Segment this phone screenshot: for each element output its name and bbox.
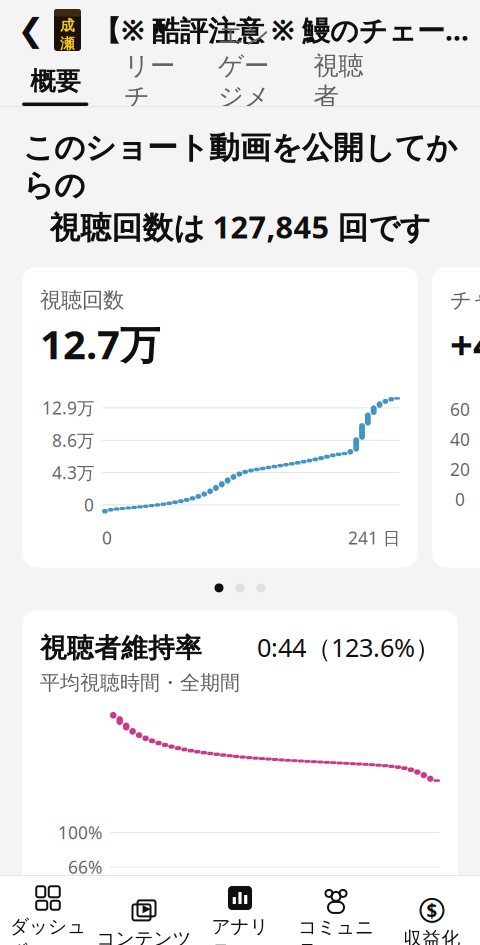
button[interactable]: 概要: [8, 60, 102, 106]
staticText: 12.7万: [40, 317, 160, 370]
staticText: 概要: [30, 66, 80, 97]
staticText: 0:44（123.6%）: [257, 630, 440, 664]
staticText: エンゲージメント: [218, 19, 270, 143]
button[interactable]: $: [384, 894, 480, 945]
staticText: 241 日: [348, 526, 400, 549]
staticText: $: [426, 898, 437, 923]
staticText: このショート動画を公開してからの: [23, 129, 457, 204]
staticText: +4: [450, 317, 480, 370]
staticText: ❮: [17, 12, 44, 48]
staticText: リーチ: [124, 50, 175, 112]
button[interactable]: 視聴者: [291, 60, 386, 106]
staticText: 0: [84, 493, 94, 516]
staticText: 成瀬: [60, 16, 75, 52]
staticText: ▶: [142, 902, 150, 914]
staticText: 60: [450, 398, 470, 421]
staticText: 12.9万: [42, 396, 94, 419]
button[interactable]: アナリティ…: [192, 882, 288, 945]
staticText: ダッシュボ…: [10, 915, 86, 945]
button[interactable]: ダッシュボ…: [0, 882, 96, 945]
staticText: アナリティ…: [211, 915, 268, 945]
staticText: 40: [450, 428, 470, 451]
staticText: 0: [455, 488, 465, 511]
staticText: 66%: [68, 856, 102, 879]
staticText: 8.6万: [52, 429, 94, 452]
staticText: 収益化: [403, 927, 460, 945]
staticText: コミュニティ: [298, 916, 374, 945]
button[interactable]: コミュニティ: [288, 883, 384, 945]
staticText: チャ: [450, 287, 480, 313]
button[interactable]: リーチ: [102, 60, 197, 106]
staticText: 0: [102, 526, 112, 549]
staticText: 【※ 酷評注意 ※ 鰻のチェー…: [93, 11, 469, 49]
staticText: 視聴回数は 127,845 回です: [49, 206, 430, 247]
staticText: 平均視聴時間・全期間: [40, 670, 240, 695]
staticText: 視聴回数: [40, 287, 124, 313]
staticText: コンテンツ: [96, 927, 191, 945]
staticText: 視聴者: [313, 50, 363, 112]
button[interactable]: ▶: [96, 894, 192, 945]
staticText: 4.3万: [52, 461, 94, 484]
button[interactable]: エンゲージメント: [197, 60, 291, 106]
staticText: 100%: [58, 821, 102, 844]
button[interactable]: 戻る: [8, 4, 54, 56]
staticText: 視聴者維持率: [40, 632, 202, 665]
staticText: 20: [450, 458, 470, 481]
